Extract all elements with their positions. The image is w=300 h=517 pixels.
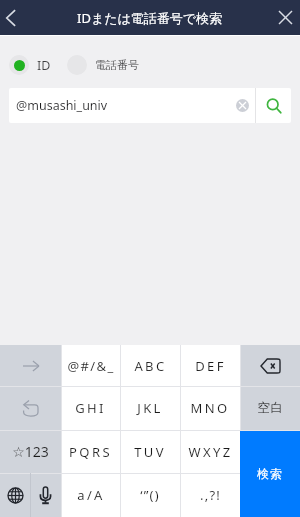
button[interactable]: Backspace bbox=[240, 345, 300, 386]
staticText: ID bbox=[37, 57, 51, 74]
staticText: IDまたは電話番号で検索 bbox=[77, 9, 223, 27]
button[interactable]: @#/&_ bbox=[61, 345, 120, 386]
staticText: @musashi_univ bbox=[16, 97, 230, 114]
button[interactable]: ID bbox=[9, 55, 51, 75]
staticText: 電話番号 bbox=[95, 58, 139, 72]
button[interactable]: .,?! bbox=[180, 473, 240, 517]
staticText: MNO bbox=[190, 399, 230, 417]
button[interactable]: TUV bbox=[120, 430, 180, 473]
staticText: DEF bbox=[195, 357, 226, 375]
button[interactable]: a/A bbox=[61, 473, 120, 517]
staticText: GHI bbox=[75, 399, 106, 417]
button[interactable]: Voice input bbox=[30, 473, 61, 517]
button[interactable]: ‘”() bbox=[120, 473, 180, 517]
staticText: .,?! bbox=[200, 486, 221, 504]
button[interactable]: 空白 bbox=[240, 386, 300, 430]
button[interactable]: Undo bbox=[0, 386, 61, 430]
button[interactable]: Close bbox=[268, 0, 300, 35]
staticText: 検索 bbox=[257, 466, 284, 481]
staticText: ☆123 bbox=[12, 442, 49, 461]
button[interactable]: 検索 bbox=[240, 430, 300, 517]
button[interactable]: GHI bbox=[61, 386, 120, 430]
staticText: PQRS bbox=[69, 443, 112, 461]
button[interactable]: Next bbox=[0, 345, 61, 386]
button[interactable]: ☆123 bbox=[0, 430, 61, 473]
button[interactable]: WXYZ bbox=[180, 430, 240, 473]
staticText: a/A bbox=[77, 486, 105, 504]
button[interactable]: Search bbox=[256, 88, 291, 123]
staticText: @#/&_ bbox=[67, 357, 115, 375]
staticText: JKL bbox=[137, 399, 163, 417]
button[interactable]: ABC bbox=[120, 345, 180, 386]
button[interactable]: Clear bbox=[230, 88, 255, 123]
button[interactable]: DEF bbox=[180, 345, 240, 386]
button[interactable]: MNO bbox=[180, 386, 240, 430]
button[interactable]: Back bbox=[0, 0, 32, 35]
staticText: TUV bbox=[134, 443, 166, 461]
staticText: ‘”() bbox=[140, 486, 160, 504]
staticText: 空白 bbox=[257, 400, 284, 416]
staticText: WXYZ bbox=[188, 443, 233, 461]
button[interactable]: PQRS bbox=[61, 430, 120, 473]
button[interactable]: JKL bbox=[120, 386, 180, 430]
button[interactable]: 電話番号 bbox=[67, 55, 139, 75]
staticText: ABC bbox=[134, 357, 167, 375]
button[interactable]: Change language bbox=[0, 473, 30, 517]
